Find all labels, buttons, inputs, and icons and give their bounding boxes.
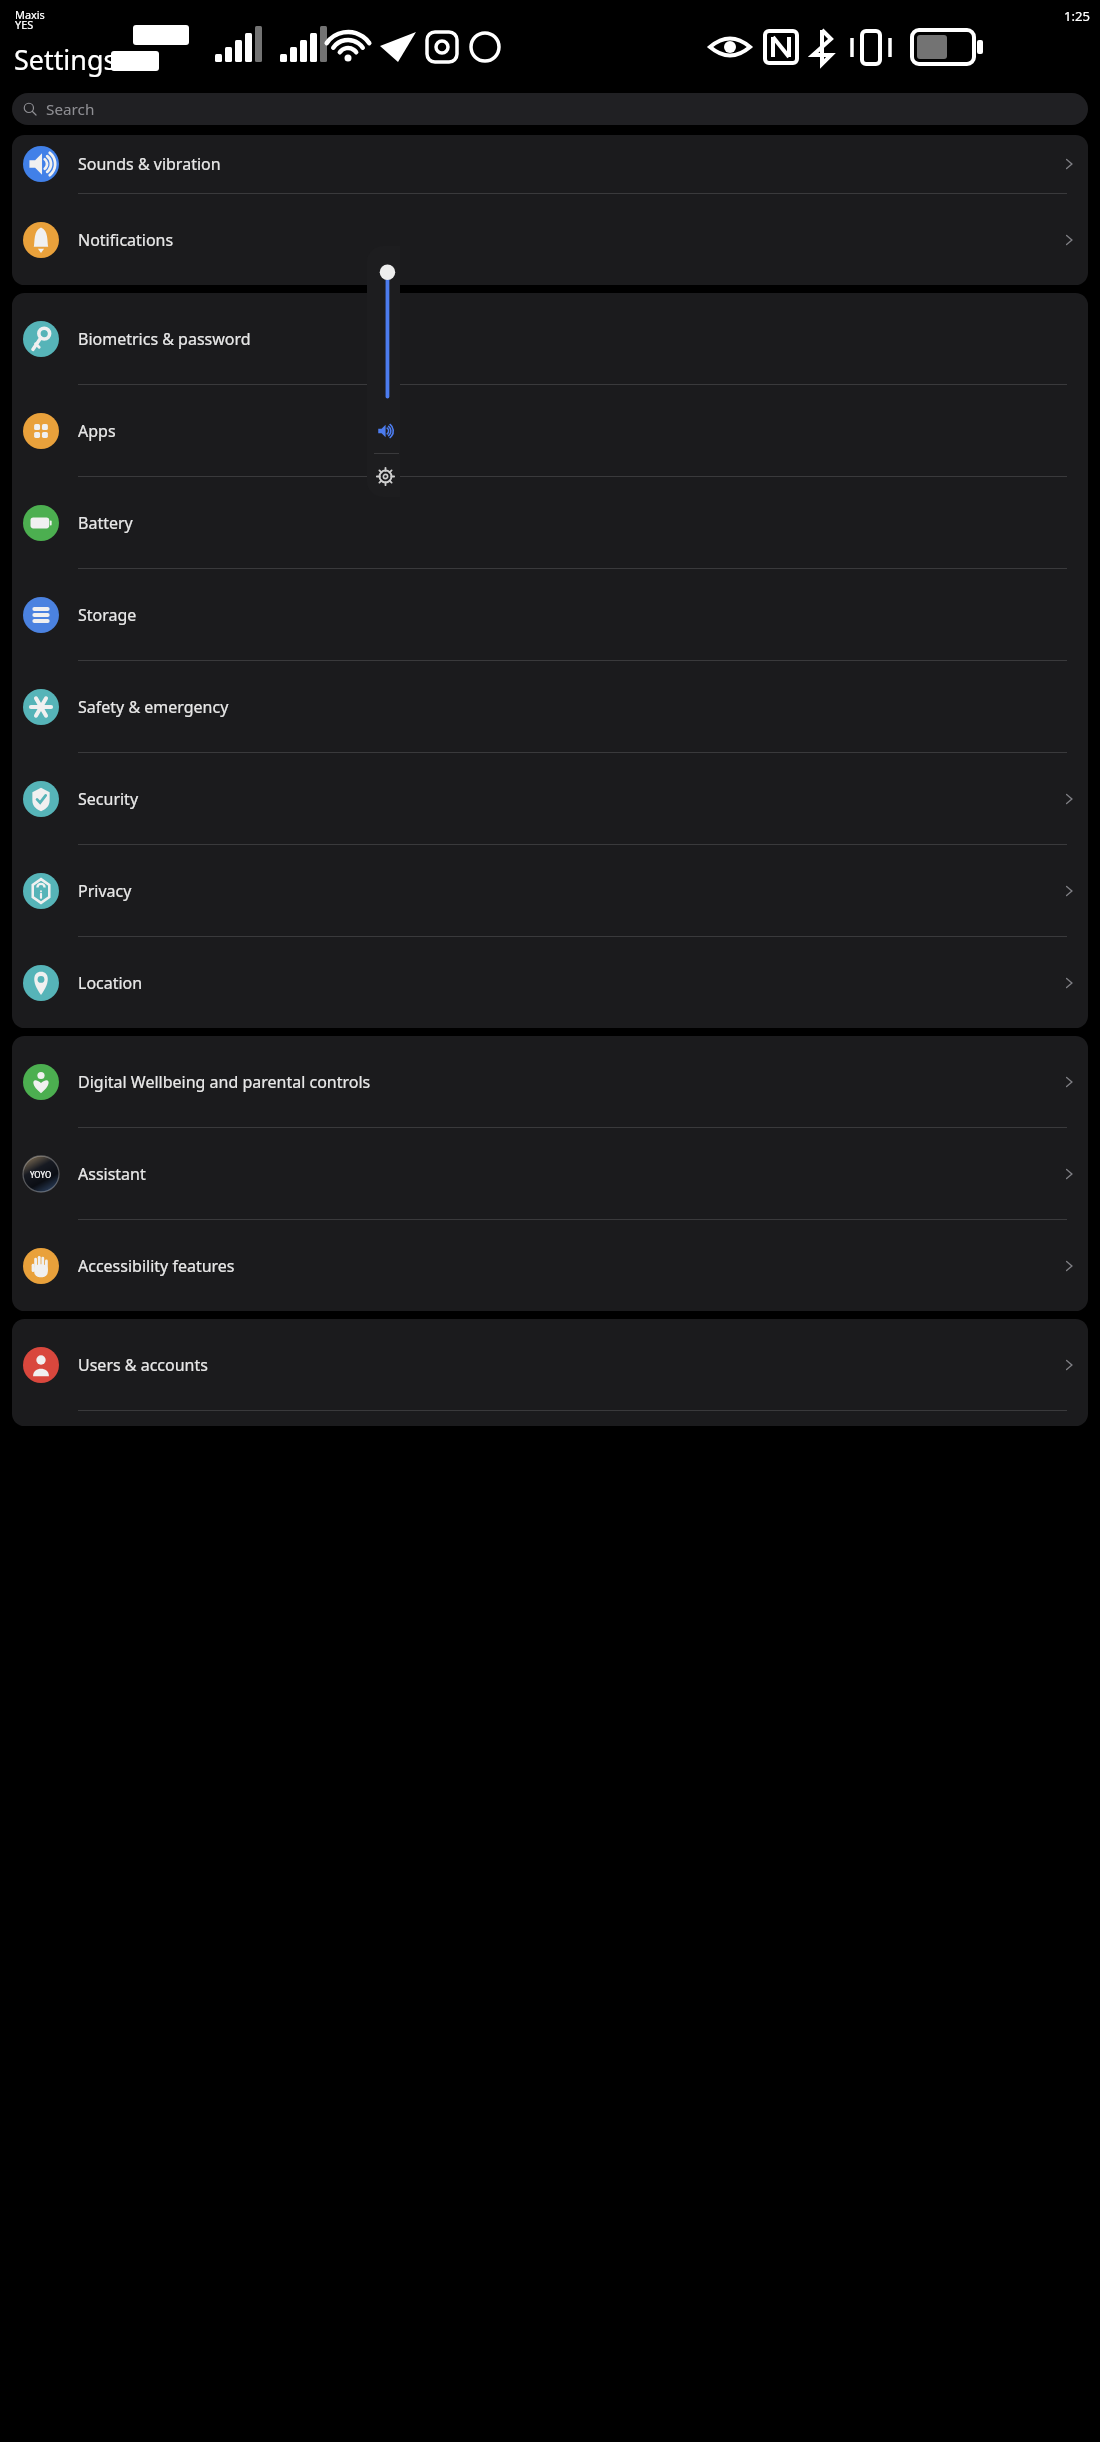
button[interactable]: Safety & emergency (12, 661, 1088, 752)
staticText: YES (15, 17, 34, 32)
button[interactable]: Biometrics & password (12, 293, 1088, 384)
staticText: Sounds & vibration (78, 153, 1061, 175)
button[interactable]: Privacy (12, 845, 1088, 936)
staticText: Accessibility features (78, 1255, 1061, 1277)
button[interactable]: Location (12, 937, 1088, 1028)
staticText: Maxis (15, 7, 45, 22)
staticText: Digital Wellbeing and parental controls (78, 1071, 1061, 1093)
button[interactable]: Storage (12, 569, 1088, 660)
staticText: Privacy (78, 880, 1061, 902)
staticText: Settings (14, 41, 117, 78)
staticText: Notifications (78, 229, 1061, 251)
staticText: 1:25 (1064, 7, 1090, 25)
button[interactable]: Volume (375, 421, 395, 441)
staticText: Battery (78, 512, 1061, 534)
button[interactable]: Users & accounts (12, 1319, 1088, 1410)
button[interactable]: Apps (12, 385, 1088, 476)
button[interactable]: YOYO (12, 1128, 1088, 1219)
staticText: Assistant (78, 1163, 1061, 1185)
button[interactable]: Battery (12, 477, 1088, 568)
staticText: YOYO (30, 1169, 52, 1180)
button[interactable]: Sound settings (376, 467, 395, 486)
button[interactable]: Security (12, 753, 1088, 844)
button[interactable]: Digital Wellbeing and parental controls (12, 1036, 1088, 1127)
button[interactable]: Notifications (12, 194, 1088, 285)
button[interactable]: Accessibility features (12, 1220, 1088, 1311)
staticText: Location (78, 972, 1061, 994)
button[interactable]: Search (12, 93, 1088, 125)
staticText: Security (78, 788, 1061, 810)
staticText: Biometrics & password (78, 328, 1061, 350)
button[interactable]: Sounds & vibration (12, 135, 1088, 193)
staticText: Apps (78, 420, 1061, 442)
staticText: Storage (78, 604, 1061, 626)
staticText: Users & accounts (78, 1354, 1061, 1376)
staticText: Safety & emergency (78, 696, 1061, 718)
staticText: Search (46, 99, 95, 120)
